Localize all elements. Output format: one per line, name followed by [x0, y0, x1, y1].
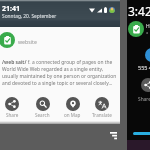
- button[interactable]: Search: [27, 97, 57, 118]
- staticText: Share: [138, 96, 150, 103]
- button[interactable]: Call: [145, 48, 150, 62]
- staticText: 21:41: [2, 4, 20, 14]
- staticText: World Wide Web regarded as a single enti…: [2, 66, 104, 73]
- staticText: Share: [6, 112, 19, 118]
- staticText: on Map: [64, 112, 81, 118]
- staticText: Translate: [92, 112, 112, 118]
- staticText: and devoted to a single topic or several…: [2, 80, 113, 87]
- staticText: Search: [35, 112, 50, 118]
- staticText: H: [146, 23, 150, 30]
- staticText: /web sait/ f. a connected group of pages…: [2, 59, 113, 66]
- staticText: Sonntag, 20. September: [2, 13, 57, 20]
- button[interactable]: Share: [0, 97, 27, 118]
- staticText: website: [18, 38, 37, 45]
- button[interactable]: Translate: [87, 97, 117, 118]
- button[interactable]: Account: [109, 7, 115, 13]
- staticText: a: [146, 30, 149, 35]
- button[interactable]: Sort: [110, 132, 117, 139]
- button[interactable]: website app icon: [0, 32, 15, 48]
- staticText: usually maintained by one person or orga…: [2, 73, 117, 80]
- button[interactable]: Share: [141, 78, 150, 92]
- staticText: 3:42: [128, 3, 150, 19]
- button[interactable]: on Map: [57, 97, 87, 118]
- staticText: 555 4: [138, 64, 150, 71]
